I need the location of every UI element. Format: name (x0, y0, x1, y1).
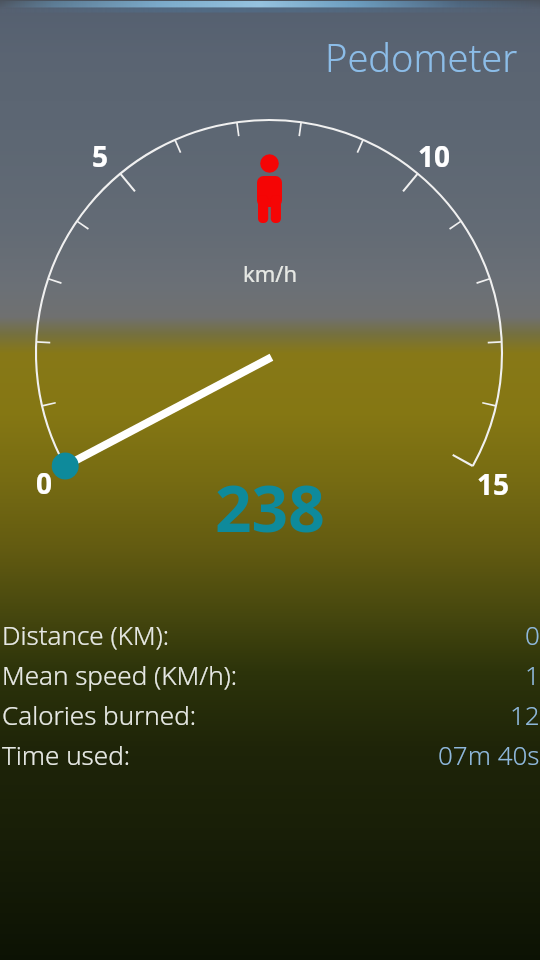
staticText: 0 (36, 464, 53, 502)
button[interactable]: Distance (KM): (0, 614, 540, 654)
button[interactable]: Calories burned: (0, 694, 540, 734)
staticText: 07m 40s (438, 737, 540, 772)
staticText: 238 (215, 464, 325, 551)
other: Speed gauge, 238 steps (0, 0, 540, 960)
staticText: 12 (510, 697, 540, 732)
staticText: 5 (92, 137, 109, 175)
staticText: Time used: (2, 737, 131, 772)
button[interactable]: Time used: (0, 734, 540, 774)
staticText: km/h (243, 258, 298, 288)
staticText: 10 (418, 137, 451, 175)
button[interactable]: Mean speed (KM/h): (0, 654, 540, 694)
button[interactable]: Pedometer (0, 31, 518, 83)
staticText: Mean speed (KM/h): (2, 657, 238, 692)
staticText: 1 (525, 657, 540, 692)
staticText: 0 (525, 617, 540, 652)
staticText: 15 (477, 465, 510, 503)
staticText: Calories burned: (2, 697, 197, 732)
staticText: Pedometer (325, 31, 518, 83)
staticText: Distance (KM): (2, 617, 170, 652)
